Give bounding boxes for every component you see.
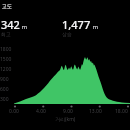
staticText: 13.00	[89, 108, 102, 115]
staticText: 고도	[2, 3, 12, 9]
button[interactable]: 342	[1, 17, 28, 38]
staticText: 거리(km)	[55, 116, 76, 123]
staticText: 0.00	[9, 108, 19, 115]
staticText: 300	[0, 96, 9, 103]
button[interactable]: 고도	[2, 3, 12, 9]
staticText: 9.00	[63, 108, 73, 115]
staticText: 1,477	[62, 17, 91, 32]
staticText: m	[20, 23, 28, 31]
staticText: 4.00	[36, 108, 46, 115]
staticText: 600	[0, 86, 9, 93]
button[interactable]: 1,477	[62, 17, 99, 38]
staticText: 900	[0, 76, 9, 83]
staticText: 상승	[62, 31, 72, 37]
staticText: 1500	[0, 56, 12, 63]
staticText: 342	[1, 17, 20, 32]
staticText: 18.00	[115, 108, 128, 115]
other: Elevation profile chart	[0, 0, 130, 130]
staticText: 1200	[0, 66, 12, 73]
staticText: 1800	[0, 46, 12, 53]
staticText: m	[91, 23, 99, 31]
staticText: 최고	[1, 31, 11, 37]
